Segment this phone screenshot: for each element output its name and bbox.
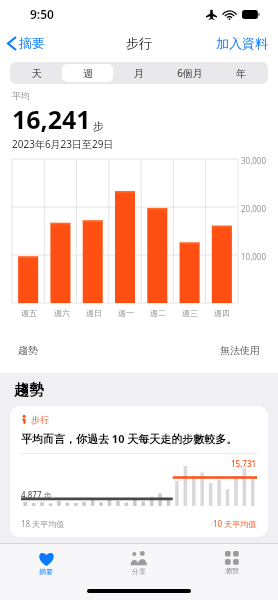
staticText: 20,000 <box>241 203 267 214</box>
button[interactable]: 趨勢 <box>8 337 270 363</box>
staticText: 週日 <box>86 308 102 318</box>
staticText: 4,877 步 <box>21 489 52 500</box>
staticText: 趨勢 <box>14 381 44 400</box>
staticText: 步行 <box>31 414 49 425</box>
staticText: 15,731 <box>231 458 257 469</box>
staticText: 分享 <box>132 567 146 576</box>
staticText: 平均而言，你過去 10 天每天走的步數較多。 <box>21 431 238 446</box>
button[interactable]: 月 <box>113 64 164 82</box>
button[interactable]: 瀏覽 <box>185 544 278 582</box>
staticText: 摘要 <box>19 35 45 51</box>
staticText: 摘要 <box>39 567 53 576</box>
staticText: 週 <box>83 67 93 80</box>
staticText: 10 天平均值 <box>213 518 257 529</box>
staticText: 天 <box>32 67 42 80</box>
staticText: 平均 <box>12 90 30 101</box>
button[interactable]: 6個月 <box>164 64 215 82</box>
staticText: 18 天平均值 <box>21 518 65 529</box>
staticText: 2023年6月23日至29日 <box>12 137 114 151</box>
staticText: 瀏覽 <box>225 566 239 575</box>
staticText: 步行 <box>126 35 152 51</box>
staticText: 週三 <box>182 308 198 318</box>
staticText: 16,241 <box>12 102 91 136</box>
button[interactable]: 加入資料 <box>216 31 278 55</box>
button[interactable]: 年 <box>215 64 266 82</box>
button[interactable]: 分享 <box>92 544 185 582</box>
staticText: 9:50 <box>30 6 54 22</box>
staticText: 週一 <box>118 308 134 318</box>
staticText: 步 <box>93 119 104 133</box>
staticText: 趨勢 <box>18 344 38 357</box>
button[interactable]: 步行 <box>10 406 268 537</box>
staticText: 週六 <box>54 308 70 318</box>
staticText: 10,000 <box>241 251 267 262</box>
staticText: 週二 <box>150 308 166 318</box>
staticText: 年 <box>236 67 246 80</box>
button[interactable]: 摘要 <box>0 31 51 55</box>
staticText: 6個月 <box>177 66 203 80</box>
staticText: 月 <box>134 67 144 80</box>
staticText: 無法使用 <box>220 344 260 357</box>
button[interactable]: 天 <box>12 64 62 82</box>
button[interactable]: 摘要 <box>0 544 92 582</box>
button[interactable]: 週 <box>62 64 113 82</box>
staticText: 週五 <box>21 308 37 318</box>
staticText: 週四 <box>214 308 230 318</box>
staticText: 30,000 <box>241 155 267 166</box>
